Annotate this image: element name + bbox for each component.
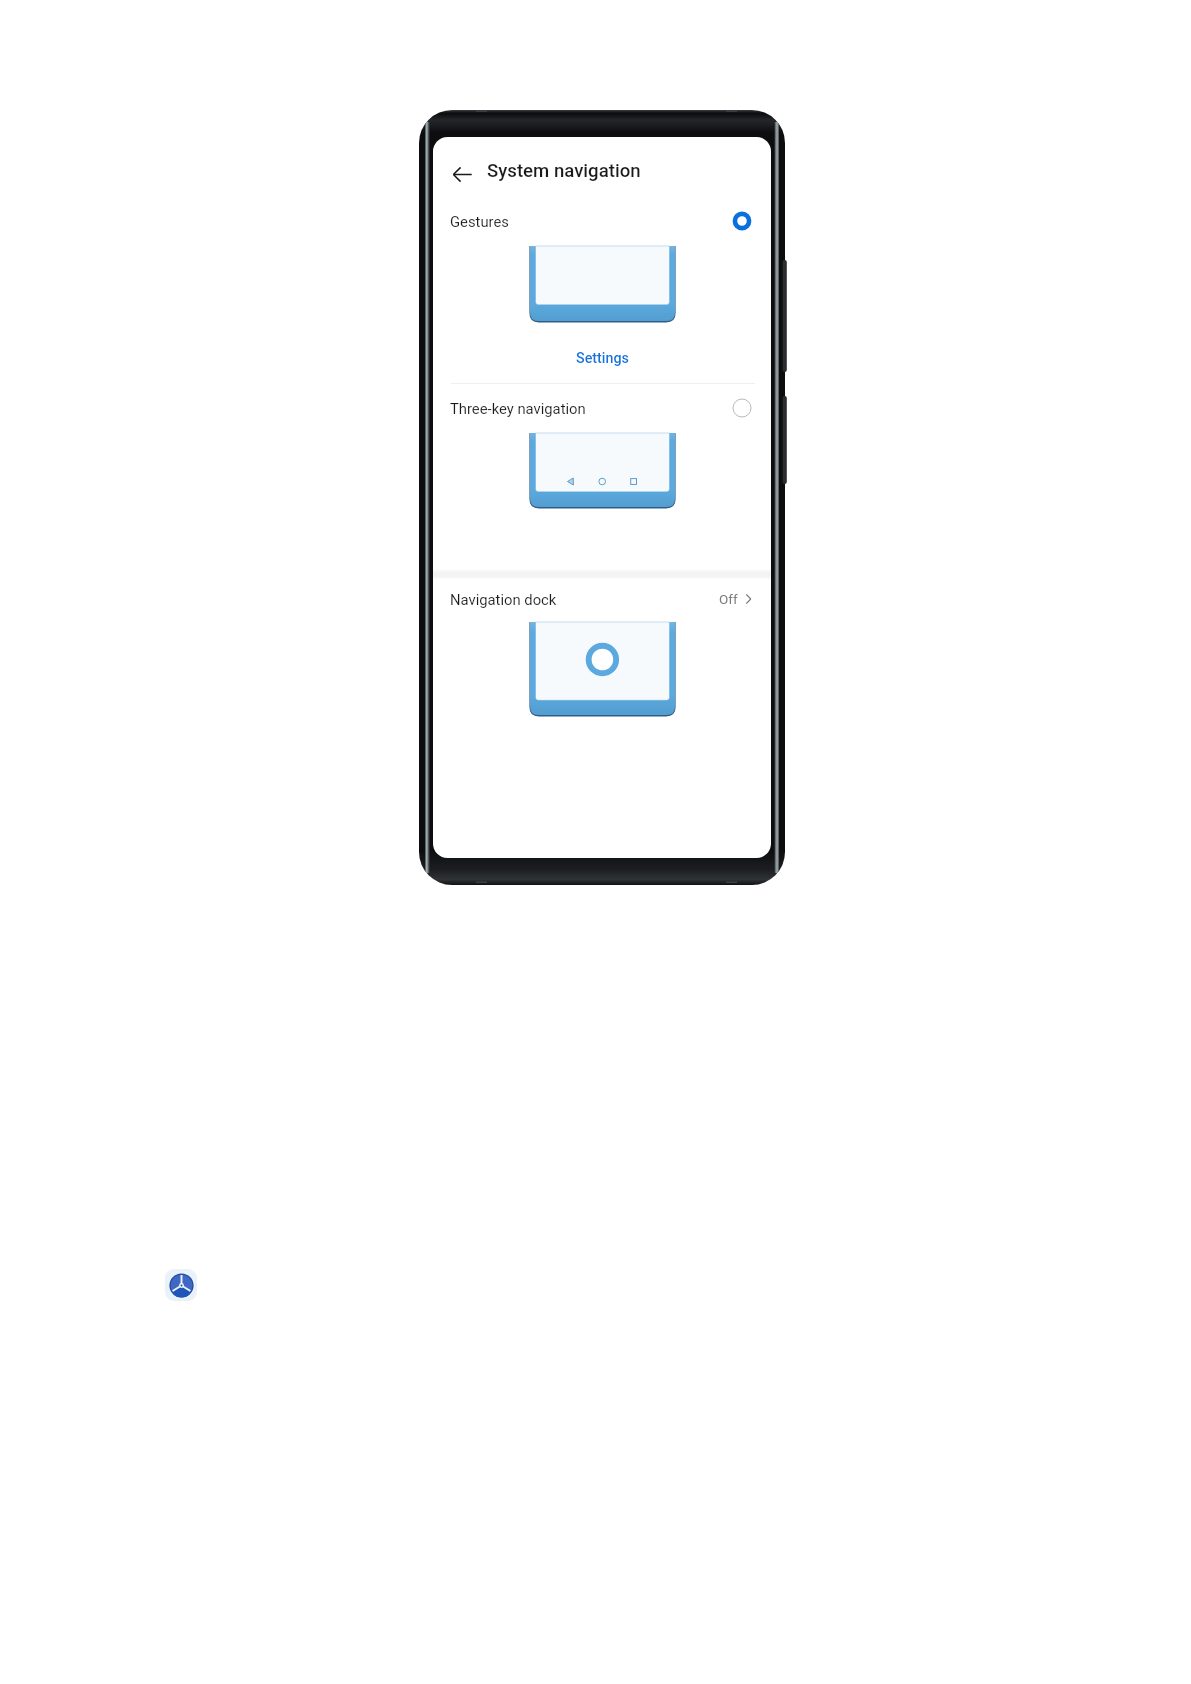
staticText: Off — [719, 591, 738, 607]
staticText: Settings — [576, 350, 629, 367]
staticText: Navigation dock — [450, 591, 557, 608]
button[interactable]: Settings — [564, 348, 641, 369]
button[interactable]: Navigation app icon — [165, 1269, 197, 1301]
button[interactable]: Three-key navigation — [433, 389, 771, 427]
button[interactable]: Gestures — [433, 202, 771, 240]
button[interactable]: Unselected option — [727, 393, 757, 423]
staticText: Three-key navigation — [450, 400, 586, 417]
staticText: System navigation — [487, 160, 641, 182]
staticText: Gestures — [450, 213, 509, 230]
button[interactable]: Selected option — [727, 206, 757, 236]
button[interactable]: Back — [442, 154, 482, 194]
button[interactable]: Navigation dock — [433, 580, 771, 618]
